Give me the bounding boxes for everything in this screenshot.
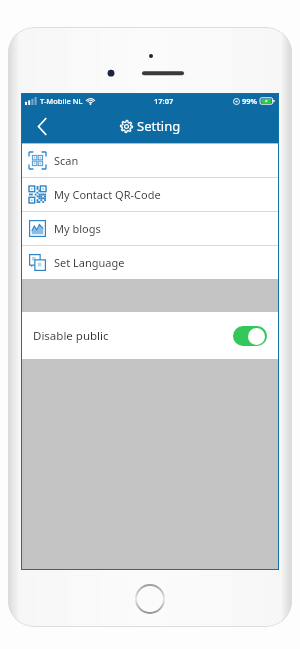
button[interactable]: Set Language <box>21 246 279 279</box>
button[interactable]: Back <box>29 113 55 139</box>
button[interactable]: Disable public toggle <box>233 326 267 346</box>
button[interactable]: My Contact QR-Code <box>21 178 279 211</box>
staticText: Disable public <box>33 328 109 344</box>
button[interactable]: Scan <box>21 144 279 177</box>
staticText: Set Language <box>54 255 125 270</box>
button[interactable]: My blogs <box>21 212 279 245</box>
staticText: Setting <box>137 117 181 135</box>
staticText: Scan <box>54 153 79 168</box>
staticText: 17:07 <box>154 96 174 106</box>
button[interactable]: Disable public <box>21 312 279 359</box>
staticText: T-Mobile NL <box>40 96 83 106</box>
staticText: My Contact QR-Code <box>54 187 161 202</box>
staticText: My blogs <box>54 221 101 236</box>
staticText: 99% <box>242 96 258 106</box>
